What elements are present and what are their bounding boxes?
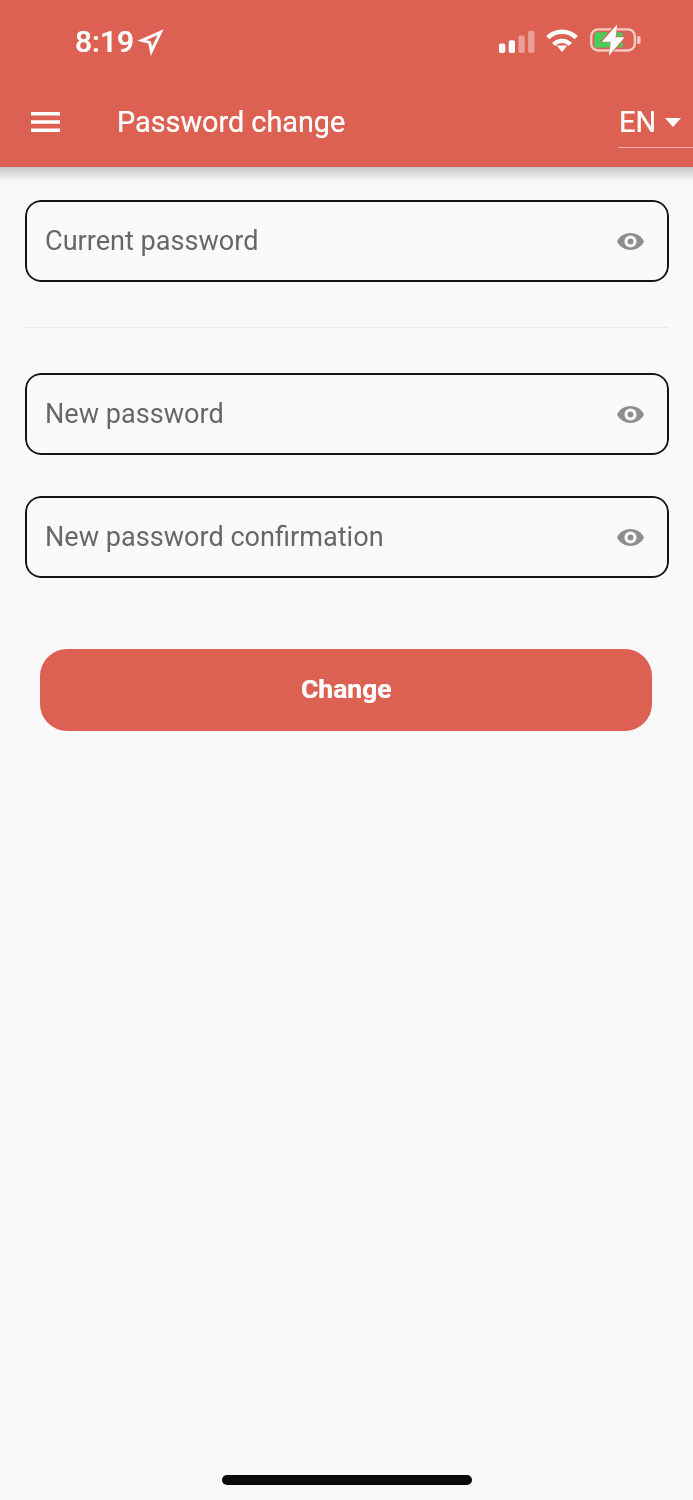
button[interactable]: Show password [603,510,657,564]
button[interactable]: Change [40,649,652,731]
button[interactable]: Show password [603,387,657,441]
button[interactable]: Current password [25,200,669,282]
button[interactable]: Show password [603,214,657,268]
staticText: 8:19 [75,24,135,59]
button[interactable]: New password confirmation [25,496,669,578]
button[interactable]: Open navigation menu [18,94,73,149]
staticText: New password [45,398,224,430]
staticText: Change [301,673,392,704]
button[interactable]: New password [25,373,669,455]
staticText: Password change [117,105,346,139]
staticText: New password confirmation [45,521,384,553]
staticText: Current password [45,225,259,257]
button[interactable]: EN [612,96,690,148]
staticText: EN [619,105,657,139]
